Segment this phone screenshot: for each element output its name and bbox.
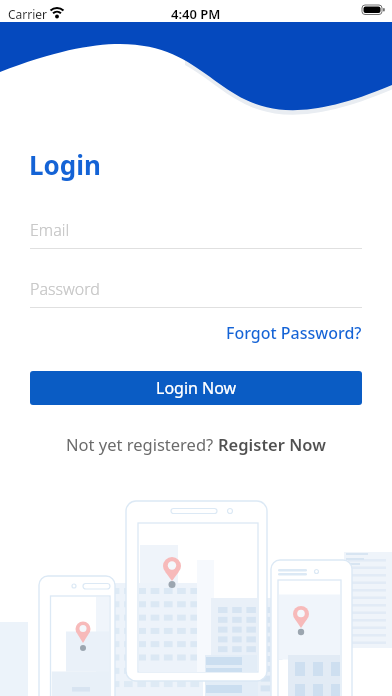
button[interactable]: Login Now [30,371,362,405]
button[interactable]: Email [30,219,362,249]
button[interactable]: Not yet registered? [0,433,392,455]
staticText: Not yet registered? [66,433,218,455]
button[interactable]: Forgot Password? [226,322,362,344]
staticText: 4:40 PM [171,5,221,23]
staticText: Email [30,219,70,241]
staticText: Password [30,278,100,300]
staticText: Register Now [218,433,326,455]
staticText: Login [29,147,101,182]
staticText: Carrier [8,6,48,22]
staticText: Login Now [156,377,237,399]
button[interactable]: Password [30,278,362,308]
